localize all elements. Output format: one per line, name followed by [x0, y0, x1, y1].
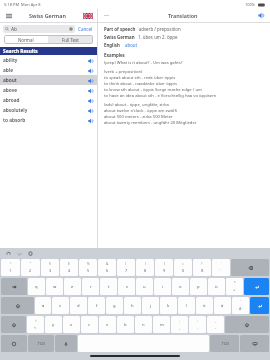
button[interactable]: about	[0, 75, 97, 85]
button[interactable]: y	[45, 316, 62, 333]
button[interactable]: abroad	[0, 95, 97, 105]
button[interactable]: ü	[208, 278, 225, 295]
button[interactable]: kbdown	[240, 335, 269, 352]
button[interactable]: b	[117, 316, 134, 333]
button[interactable]: v	[99, 316, 116, 333]
button[interactable]: m	[153, 316, 170, 333]
staticText: &	[106, 262, 109, 266]
staticText: to absorb	[3, 117, 26, 124]
button[interactable]: to absorb	[0, 115, 97, 125]
button[interactable]: &	[98, 259, 116, 276]
button[interactable]: Paste	[27, 250, 33, 256]
button[interactable]: Speak absolutely	[87, 107, 94, 114]
button[interactable]: °	[1, 259, 20, 276]
button[interactable]: Full Text	[48, 35, 93, 44]
button[interactable]: Speak able	[87, 67, 94, 74]
button[interactable]: Speak about	[87, 77, 94, 84]
button[interactable]: q	[28, 278, 45, 295]
button[interactable]: l	[178, 297, 195, 314]
staticText: about twenty members - ungfähr 20 Mitgli…	[104, 120, 197, 126]
button[interactable]: :	[189, 316, 206, 333]
button[interactable]: Redo	[16, 250, 22, 256]
button[interactable]: k	[160, 297, 177, 314]
button[interactable]: i	[154, 278, 171, 295]
button[interactable]: s	[52, 297, 69, 314]
button[interactable]: '	[232, 297, 249, 314]
button[interactable]: `	[212, 259, 230, 276]
button[interactable]: c	[81, 316, 98, 333]
button[interactable]: shift	[1, 297, 34, 314]
button[interactable]: *	[226, 278, 243, 295]
staticText: d	[77, 303, 80, 309]
button[interactable]: a	[35, 297, 51, 314]
staticText: /	[125, 262, 127, 266]
button[interactable]: globe	[1, 335, 27, 352]
button[interactable]: x	[63, 316, 80, 333]
button[interactable]: f	[88, 297, 105, 314]
button[interactable]: Ab	[3, 25, 75, 33]
button[interactable]: del	[231, 259, 269, 276]
button[interactable]: =	[174, 259, 192, 276]
button[interactable]: Speak above	[87, 87, 94, 94]
button[interactable]: §	[41, 259, 59, 276]
button[interactable]: ä	[214, 297, 231, 314]
staticText: (	[145, 262, 146, 266]
button[interactable]: Collapse	[102, 12, 110, 20]
button[interactable]: t	[100, 278, 117, 295]
button[interactable]: Menu	[4, 11, 13, 20]
staticText: o	[179, 284, 182, 290]
button[interactable]: %	[79, 259, 97, 276]
button[interactable]: e	[64, 278, 81, 295]
button[interactable]: Speak ability	[87, 57, 94, 64]
button[interactable]: Speak abroad	[87, 97, 94, 104]
button[interactable]: tab	[1, 278, 27, 295]
button[interactable]: $	[60, 259, 78, 276]
button[interactable]: Speak to absorb	[87, 117, 94, 124]
button[interactable]: )	[155, 259, 173, 276]
staticText: n	[142, 322, 145, 328]
button[interactable]: .?123	[210, 335, 239, 352]
button[interactable]: enter2	[250, 297, 269, 314]
staticText: ü	[215, 284, 218, 290]
button[interactable]: Cancel	[77, 26, 94, 32]
button[interactable]: n	[135, 316, 152, 333]
button[interactable]: absolutely	[0, 105, 97, 115]
button[interactable]: "	[21, 259, 40, 276]
button[interactable]: shift2	[225, 316, 269, 333]
button[interactable]: Speak translation	[257, 11, 266, 20]
staticText: .?123	[221, 342, 229, 346]
button[interactable]: Normal	[4, 35, 48, 44]
button[interactable]: mic	[55, 335, 77, 352]
button[interactable]: d	[70, 297, 87, 314]
button[interactable]: z	[118, 278, 135, 295]
button[interactable]: g	[106, 297, 123, 314]
button[interactable]: ;	[171, 316, 188, 333]
button[interactable]: ability	[0, 55, 97, 65]
button[interactable]: o	[172, 278, 189, 295]
button[interactable]: Undo	[5, 250, 11, 256]
staticText: 3	[49, 268, 52, 273]
button[interactable]: >	[27, 316, 44, 333]
button[interactable]: p	[190, 278, 207, 295]
button[interactable]: u	[136, 278, 153, 295]
staticText: Swiss German	[29, 12, 66, 19]
staticText: (verb + preposition)	[104, 69, 143, 75]
button[interactable]: above	[0, 85, 97, 95]
button[interactable]: Language English	[82, 12, 93, 19]
button[interactable]: w	[46, 278, 63, 295]
button[interactable]: _	[207, 316, 224, 333]
button[interactable]: ö	[196, 297, 213, 314]
button[interactable]: shift2	[1, 316, 26, 333]
button[interactable]: .?123	[28, 335, 54, 352]
staticText: ?	[201, 262, 203, 266]
button[interactable]: r	[82, 278, 99, 295]
button[interactable]: able	[0, 65, 97, 75]
staticText: k	[167, 303, 170, 309]
button[interactable]: j	[142, 297, 159, 314]
button[interactable]: /	[117, 259, 135, 276]
button[interactable]: ?	[193, 259, 211, 276]
button[interactable]: enter	[244, 278, 269, 295]
button[interactable]: (	[136, 259, 154, 276]
button[interactable]: h	[124, 297, 141, 314]
